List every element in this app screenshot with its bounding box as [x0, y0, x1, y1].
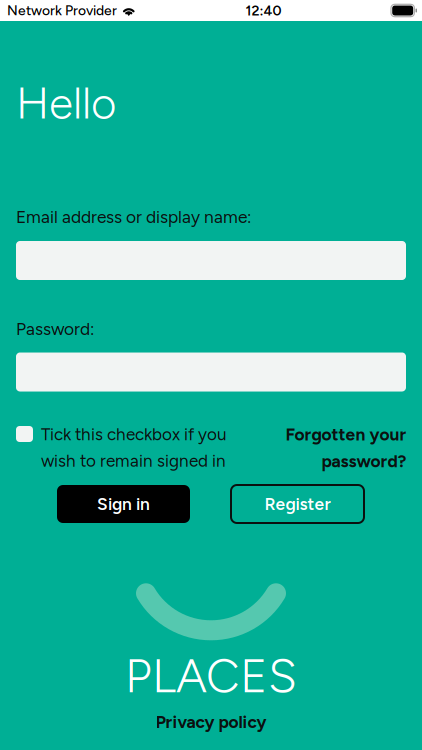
- staticText: Privacy policy: [155, 712, 266, 732]
- staticText: Tick this checkbox if you wish to remain…: [41, 424, 227, 471]
- staticText: Password:: [16, 319, 94, 339]
- staticText: Sign in: [97, 494, 150, 514]
- staticText: 12:40: [245, 2, 281, 19]
- staticText: Register: [264, 494, 330, 514]
- staticText: Network Provider: [7, 2, 117, 19]
- staticText: PLACES: [125, 648, 297, 704]
- button[interactable]: Privacy policy: [131, 710, 291, 734]
- staticText: Hello: [16, 77, 116, 129]
- button[interactable]: Sign in: [57, 485, 190, 523]
- staticText: Forgotten your password?: [285, 424, 406, 472]
- button[interactable]: Tick this checkbox if you wish to remain…: [16, 424, 227, 472]
- staticText: Email address or display name:: [16, 207, 251, 227]
- button[interactable]: Register: [231, 485, 364, 523]
- button[interactable]: Forgotten your password?: [280, 424, 406, 472]
